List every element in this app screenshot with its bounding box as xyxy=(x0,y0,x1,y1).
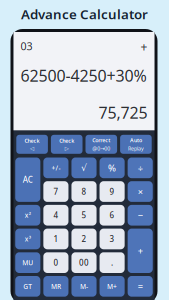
staticText: Check xyxy=(25,137,40,144)
staticText: GT xyxy=(23,282,32,291)
button[interactable]: − xyxy=(128,205,153,226)
staticText: MR xyxy=(51,282,61,291)
staticText: MU xyxy=(22,258,33,267)
staticText: 62500-4250+30% xyxy=(20,65,146,86)
button[interactable]: = xyxy=(128,276,153,297)
button[interactable]: 1 xyxy=(43,229,68,249)
staticText: ▷ xyxy=(65,145,69,151)
staticText: AC xyxy=(23,174,33,185)
staticText: + xyxy=(140,39,147,55)
staticText: ÷ xyxy=(138,162,143,174)
button[interactable]: Auto xyxy=(120,135,152,154)
staticText: Auto xyxy=(130,137,142,144)
button[interactable]: AC xyxy=(15,157,40,202)
button[interactable]: 5 xyxy=(71,205,97,226)
staticText: % xyxy=(108,162,116,174)
staticText: Correct xyxy=(92,137,110,144)
staticText: @0→00 xyxy=(92,145,110,152)
staticText: 2 xyxy=(81,234,86,244)
staticText: M- xyxy=(80,282,88,291)
button[interactable]: 4 xyxy=(43,205,68,226)
button[interactable]: × xyxy=(128,181,153,202)
button[interactable]: 7 xyxy=(43,181,68,202)
staticText: 00 xyxy=(79,257,89,268)
staticText: Replay xyxy=(128,145,144,152)
button[interactable]: % xyxy=(100,157,125,178)
button[interactable]: x² xyxy=(15,205,40,226)
button[interactable]: ÷ xyxy=(128,157,153,178)
button[interactable]: 2 xyxy=(71,229,97,249)
staticText: 5 xyxy=(81,210,86,220)
staticText: 4 xyxy=(53,210,58,220)
button[interactable]: x³ xyxy=(15,229,40,249)
staticText: . xyxy=(111,257,113,268)
button[interactable]: . xyxy=(100,252,125,273)
staticText: + xyxy=(138,245,143,257)
button[interactable]: M+ xyxy=(100,276,125,297)
button[interactable]: +/- xyxy=(43,157,68,178)
button[interactable]: M- xyxy=(71,276,97,297)
staticText: − xyxy=(138,209,143,221)
button[interactable]: 0 xyxy=(43,252,68,273)
button[interactable]: 00 xyxy=(71,252,97,273)
button[interactable]: + xyxy=(128,229,153,273)
staticText: 1 xyxy=(53,234,58,244)
staticText: 3 xyxy=(110,234,115,244)
button[interactable]: Check xyxy=(16,135,48,154)
button[interactable]: MR xyxy=(43,276,68,297)
button[interactable]: MU xyxy=(15,252,40,273)
staticText: 9 xyxy=(110,186,115,197)
staticText: 0 xyxy=(53,257,58,268)
staticText: 03 xyxy=(20,39,32,53)
staticText: = xyxy=(138,280,143,293)
staticText: ◁ xyxy=(30,145,34,151)
staticText: 7 xyxy=(53,186,58,197)
button[interactable]: 3 xyxy=(100,229,125,249)
staticText: +/- xyxy=(51,163,60,172)
staticText: Advance Calculator xyxy=(21,5,148,23)
staticText: 6 xyxy=(110,210,115,220)
staticText: 75,725 xyxy=(98,102,147,123)
button[interactable]: 9 xyxy=(100,181,125,202)
staticText: x² xyxy=(25,211,31,220)
button[interactable]: GT xyxy=(15,276,40,297)
staticText: M+ xyxy=(107,282,117,291)
button[interactable]: 8 xyxy=(71,181,97,202)
staticText: Check xyxy=(59,137,74,144)
staticText: x³ xyxy=(25,234,31,243)
staticText: × xyxy=(138,185,143,198)
button[interactable]: Correct xyxy=(85,135,117,154)
button[interactable]: Check xyxy=(51,135,82,154)
button[interactable]: 6 xyxy=(100,205,125,226)
button[interactable]: √ xyxy=(71,157,97,178)
staticText: √ xyxy=(81,163,87,173)
staticText: 8 xyxy=(81,186,86,197)
